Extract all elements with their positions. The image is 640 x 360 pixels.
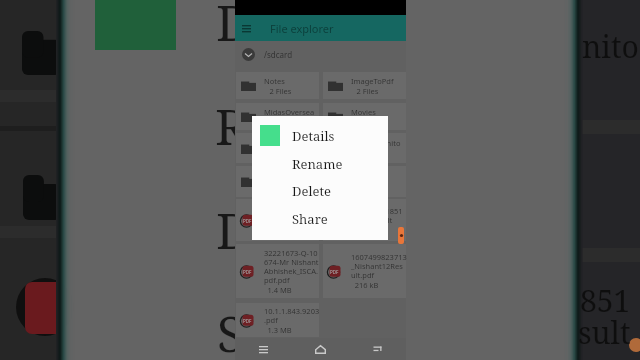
staticText: 1.4 MB [264,285,295,295]
staticText: PDF [243,218,252,224]
button[interactable]: PDF [236,303,319,337]
staticText: 2 Files [351,86,384,96]
staticText: S [217,299,245,360]
staticText: /sdcard [264,49,293,60]
staticText: Movies [351,107,376,117]
staticText: document-20 20report.pdf [264,206,311,225]
staticText: 32221673-Q-10 674-Mr Nishant Abhishek_IS… [264,248,319,285]
staticText: Music [264,138,285,148]
button[interactable]: Music [236,133,319,163]
button[interactable]: /sdcard [235,43,406,65]
button[interactable]: PDF [236,244,319,298]
staticText: Rename [292,155,343,173]
button[interactable]: PDF [323,244,406,298]
staticText: 2 Files [264,86,297,96]
button[interactable]: PDF [323,199,406,241]
staticText: 1.3 MB [264,325,295,335]
button[interactable]: Movies [323,103,406,130]
button[interactable]: Delete [252,177,388,205]
staticText: Share [292,210,328,228]
staticText: Notes [264,76,285,86]
staticText: R [215,92,248,160]
staticText: PDF [243,269,252,275]
staticText: 12 Files [264,182,297,192]
button[interactable]: NewIncognito [323,133,406,163]
staticText: PDF [330,269,339,275]
staticText: PDF [243,318,252,324]
button[interactable]: ImageToPdf [323,72,406,99]
staticText: MidasOversea [264,107,315,117]
staticText: D [216,0,253,56]
button[interactable]: MidasOversea [236,103,319,130]
staticText: Details [292,127,335,145]
staticText: IMG-20201851 _scanResult [351,206,403,225]
button[interactable]: Pictures [236,166,319,197]
staticText: 1607499823713 _Nishant12Res ult.pdf [351,252,407,280]
button[interactable]: Rename [252,150,388,178]
button[interactable]: Back [349,338,406,360]
staticText: 2 Files [264,117,297,127]
button[interactable]: Ringtones [323,166,406,197]
staticText: ImageToPdf [351,76,394,86]
staticText: 216 kB [351,280,382,290]
staticText: nito [582,26,639,67]
staticText: sult [578,312,631,353]
button[interactable]: Recent apps [235,338,292,360]
staticText: File explorer [270,21,334,36]
button[interactable]: Details [252,122,388,150]
staticText: Delete [292,182,331,200]
button[interactable]: Scroll [398,227,404,244]
staticText: 851 [580,280,631,321]
button[interactable]: PDF [236,199,319,241]
button[interactable]: Share [252,205,388,233]
button[interactable]: Home [292,338,349,360]
button[interactable]: Notes [236,72,319,99]
button[interactable]: Open navigation drawer [238,20,255,37]
staticText: D [216,196,253,264]
staticText: 10.1.1.843.9203 .pdf [264,306,320,325]
staticText: NewIncognito [351,138,401,148]
